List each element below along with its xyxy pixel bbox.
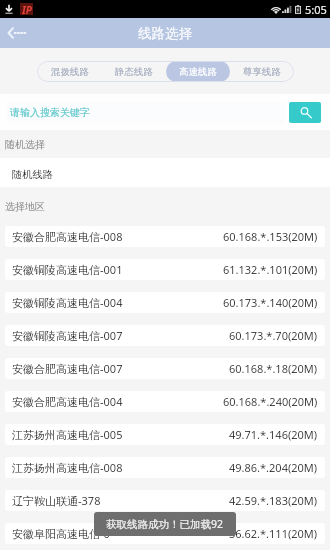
staticText: 获取线路成功！已加载92: [106, 517, 224, 531]
staticText: 49.71.*.146(20M): [229, 427, 318, 442]
staticText: 60.173.*.70(20M): [229, 328, 318, 343]
button[interactable]: 辽宁鞍山联通-378: [5, 490, 325, 511]
staticText: 选择地区: [5, 200, 45, 213]
staticText: 60.168.*.240(20M): [223, 394, 318, 409]
staticText: 高速线路: [179, 66, 217, 78]
button[interactable]: 安徽合肥高速电信-008: [5, 226, 325, 247]
button[interactable]: 安徽铜陵高速电信-007: [5, 325, 325, 346]
staticText: 随机线路: [12, 168, 53, 181]
staticText: 混拨线路: [51, 66, 89, 78]
button[interactable]: 静态线路: [102, 61, 166, 82]
staticText: 请输入搜索关键字: [10, 106, 90, 119]
button[interactable]: 安徽合肥高速电信-004: [5, 391, 325, 412]
button[interactable]: 高速线路: [166, 61, 230, 82]
button[interactable]: [7, 102, 285, 123]
button[interactable]: 江苏扬州高速电信-005: [5, 424, 325, 445]
button[interactable]: 安徽合肥高速电信-007: [5, 358, 325, 379]
staticText: 49.86.*.204(20M): [229, 460, 318, 475]
staticText: 安徽阜阳高速电信-0: [12, 526, 110, 541]
button[interactable]: 安徽铜陵高速电信-004: [5, 292, 325, 313]
staticText: 60.173.*.140(20M): [223, 295, 318, 310]
staticText: 安徽合肥高速电信-004: [12, 394, 123, 409]
staticText: 辽宁鞍山联通-378: [12, 493, 101, 508]
button[interactable]: 搜索: [289, 102, 321, 123]
button[interactable]: 江苏扬州高速电信-008: [5, 457, 325, 478]
staticText: 随机选择: [5, 138, 45, 151]
staticText: 60.168.*.153(20M): [223, 229, 318, 244]
staticText: 安徽合肥高速电信-007: [12, 361, 123, 376]
staticText: 60.168.*.18(20M): [229, 361, 318, 376]
staticText: 安徽合肥高速电信-008: [12, 229, 123, 244]
staticText: 61.132.*.101(20M): [223, 262, 318, 277]
staticText: 安徽铜陵高速电信-001: [12, 262, 123, 277]
staticText: 线路选择: [138, 25, 192, 42]
staticText: IP: [22, 3, 32, 15]
button[interactable]: 尊享线路: [230, 61, 294, 82]
staticText: 江苏扬州高速电信-005: [12, 427, 123, 442]
button[interactable]: 混拨线路: [37, 61, 102, 82]
staticText: 尊享线路: [243, 66, 281, 78]
staticText: 42.59.*.183(20M): [229, 493, 318, 508]
staticText: 5:05: [305, 2, 327, 17]
button[interactable]: 安徽阜阳高速电信-0: [5, 523, 325, 544]
staticText: 安徽铜陵高速电信-007: [12, 328, 123, 343]
staticText: 江苏扬州高速电信-008: [12, 460, 123, 475]
button[interactable]: 随机线路: [0, 158, 330, 187]
staticText: 静态线路: [115, 66, 153, 78]
staticText: 36.62.*.111(20M): [229, 526, 318, 541]
staticText: 安徽铜陵高速电信-004: [12, 295, 123, 310]
button[interactable]: 返回: [0, 18, 32, 48]
button[interactable]: 安徽铜陵高速电信-001: [5, 259, 325, 280]
